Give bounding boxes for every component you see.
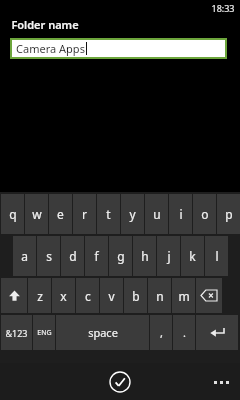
staticText: p xyxy=(225,206,233,222)
button[interactable]: More options xyxy=(208,371,234,393)
staticText: t xyxy=(106,206,111,222)
button[interactable]: g xyxy=(109,236,132,276)
staticText: o xyxy=(201,206,209,222)
staticText: e xyxy=(57,206,64,222)
button[interactable]: i xyxy=(169,194,192,234)
staticText: j xyxy=(167,248,171,264)
button[interactable]: &123 xyxy=(1,315,32,350)
staticText: k xyxy=(189,248,196,264)
button[interactable]: u xyxy=(145,194,168,234)
staticText: g xyxy=(117,248,125,264)
button[interactable]: Shift xyxy=(1,278,27,313)
button[interactable]: Enter xyxy=(196,315,238,350)
staticText: c xyxy=(85,288,91,304)
staticText: v xyxy=(108,288,115,304)
button[interactable]: ENG xyxy=(33,315,55,350)
button[interactable]: m xyxy=(172,278,195,313)
button[interactable]: z xyxy=(28,278,51,313)
button[interactable]: o xyxy=(193,194,216,234)
staticText: h xyxy=(141,248,149,264)
staticText: &123 xyxy=(5,327,28,339)
button[interactable]: n xyxy=(148,278,171,313)
staticText: n xyxy=(156,288,164,304)
staticText: d xyxy=(69,248,77,264)
staticText: f xyxy=(94,248,99,264)
button[interactable]: w xyxy=(25,194,48,234)
staticText: m xyxy=(178,288,190,304)
staticText: Folder name xyxy=(11,17,79,32)
staticText: x xyxy=(60,288,67,304)
button[interactable]: y xyxy=(121,194,144,234)
button[interactable]: c xyxy=(76,278,99,313)
staticText: . xyxy=(183,325,186,340)
button[interactable]: h xyxy=(133,236,156,276)
button[interactable]: Accept xyxy=(107,369,133,395)
staticText: 18:33 xyxy=(211,2,235,14)
button[interactable]: k xyxy=(181,236,204,276)
button[interactable]: r xyxy=(73,194,96,234)
staticText: r xyxy=(82,206,87,222)
button[interactable]: e xyxy=(49,194,72,234)
button[interactable]: , xyxy=(150,315,172,350)
staticText: , xyxy=(160,325,163,340)
staticText: ENG xyxy=(37,328,52,338)
staticText: b xyxy=(132,288,140,304)
button[interactable]: d xyxy=(61,236,84,276)
button[interactable]: p xyxy=(217,194,240,234)
button[interactable]: . xyxy=(173,315,195,350)
staticText: w xyxy=(32,206,42,222)
staticText: l xyxy=(215,248,219,264)
button[interactable]: f xyxy=(85,236,108,276)
button[interactable]: j xyxy=(157,236,180,276)
button[interactable]: s xyxy=(37,236,60,276)
button[interactable]: Camera Apps xyxy=(12,40,225,57)
button[interactable]: b xyxy=(124,278,147,313)
button[interactable]: a xyxy=(13,236,36,276)
button[interactable]: v xyxy=(100,278,123,313)
staticText: q xyxy=(9,206,17,222)
button[interactable]: q xyxy=(1,194,24,234)
button[interactable]: t xyxy=(97,194,120,234)
staticText: s xyxy=(46,248,52,264)
staticText: space xyxy=(88,325,118,340)
button[interactable]: Backspace xyxy=(196,278,222,313)
staticText: a xyxy=(21,248,28,264)
staticText: i xyxy=(179,206,183,222)
button[interactable]: space xyxy=(56,315,149,350)
button[interactable]: x xyxy=(52,278,75,313)
staticText: z xyxy=(37,288,43,304)
staticText: y xyxy=(129,206,136,222)
staticText: Camera Apps xyxy=(16,41,85,56)
staticText: u xyxy=(153,206,161,222)
button[interactable]: l xyxy=(205,236,228,276)
